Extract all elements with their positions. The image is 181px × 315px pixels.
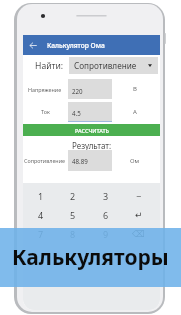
staticText: Ом	[130, 157, 140, 165]
button[interactable]: 4.5	[68, 102, 112, 121]
button[interactable]: 6	[89, 207, 122, 223]
staticText: 6	[103, 209, 109, 221]
button[interactable]: РАССЧИТАТЬ	[23, 124, 160, 136]
staticText: Результат:	[72, 140, 112, 151]
button[interactable]: 220	[68, 79, 112, 99]
button[interactable]: 48.89	[68, 150, 112, 171]
button[interactable]: ↵	[122, 207, 155, 223]
button[interactable]: 8	[57, 226, 89, 242]
staticText: 3	[103, 190, 109, 202]
staticText: ↵	[135, 210, 143, 220]
button[interactable]: 3	[89, 188, 122, 204]
button[interactable]: Сопротивление	[69, 57, 158, 74]
staticText: Сопротивление	[74, 60, 137, 71]
button[interactable]: Back	[23, 35, 160, 55]
staticText: Сопротивление	[24, 157, 66, 164]
staticText: 48.89	[72, 157, 88, 165]
staticText: 4	[38, 209, 44, 221]
staticText: −	[136, 190, 142, 202]
staticText: 9	[103, 228, 109, 240]
staticText: 1	[38, 190, 44, 202]
staticText: 8	[70, 228, 76, 240]
staticText: Калькулятор Ома	[47, 41, 105, 50]
button[interactable]: 7	[25, 226, 57, 242]
button[interactable]: −	[122, 188, 155, 204]
staticText: Ток	[41, 108, 50, 115]
staticText: В	[133, 85, 137, 93]
staticText: 4.5	[72, 109, 81, 117]
staticText: 5	[70, 209, 76, 221]
button[interactable]: ⌫	[122, 226, 155, 242]
staticText: Калькуляторы	[12, 243, 169, 272]
button[interactable]: Back	[25, 35, 41, 55]
button[interactable]: 9	[89, 226, 122, 242]
button[interactable]: 5	[57, 207, 89, 223]
staticText: Найти:	[35, 60, 64, 72]
button[interactable]: 1	[25, 188, 57, 204]
staticText: 2	[70, 190, 76, 202]
button[interactable]: 2	[57, 188, 89, 204]
staticText: А	[133, 108, 137, 116]
button[interactable]: 4	[25, 207, 57, 223]
staticText: 220	[72, 87, 83, 95]
staticText: 7	[38, 228, 44, 240]
staticText: ⌫	[132, 229, 145, 239]
staticText: РАССЧИТАТЬ	[75, 127, 109, 134]
staticText: Напряжение	[28, 86, 62, 93]
